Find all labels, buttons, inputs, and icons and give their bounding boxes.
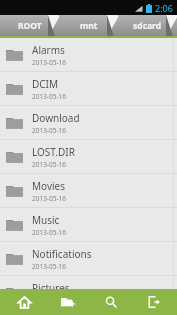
button[interactable]: DCIM — [0, 72, 177, 106]
button[interactable]: Search — [98, 289, 124, 315]
staticText: 2013-05-16 — [32, 58, 66, 67]
staticText: DCIM — [32, 77, 59, 91]
staticText: Download — [32, 111, 80, 125]
staticText: ROOT — [18, 20, 42, 32]
button[interactable]: Music — [0, 208, 177, 242]
button[interactable]: Notifications — [0, 242, 177, 276]
staticText: Notifications — [32, 247, 92, 261]
staticText: Music — [32, 213, 60, 227]
staticText: 2013-05-16 — [32, 262, 66, 271]
staticText: 2013-05-16 — [32, 92, 66, 101]
staticText: LOST.DIR — [32, 145, 75, 159]
button[interactable]: sdcard — [118, 15, 177, 36]
staticText: 2013-05-16 — [32, 228, 66, 237]
staticText: 2013-05-16 — [32, 194, 66, 203]
button[interactable]: ROOT — [0, 15, 59, 36]
button[interactable]: Pictures — [0, 276, 177, 289]
button[interactable]: Home — [11, 289, 37, 315]
staticText: mnt — [80, 20, 98, 32]
button[interactable]: LOST.DIR — [0, 140, 177, 174]
button[interactable]: Download — [0, 106, 177, 140]
staticText: sdcard — [133, 20, 162, 32]
staticText: 2013-05-16 — [32, 160, 66, 169]
staticText: Pictures — [32, 281, 70, 289]
staticText: Movies — [32, 179, 66, 193]
button[interactable]: New folder — [55, 289, 81, 315]
staticText: Alarms — [32, 43, 65, 57]
button[interactable]: Exit — [141, 289, 167, 315]
staticText: 2013-05-16 — [32, 126, 66, 135]
button[interactable]: Movies — [0, 174, 177, 208]
button[interactable]: Alarms — [0, 38, 177, 72]
button[interactable]: mnt — [59, 15, 118, 36]
staticText: 2:06 — [155, 2, 173, 14]
